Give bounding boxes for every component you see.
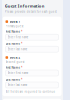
staticText: Enter last name [8, 47, 28, 51]
staticText: All fields are required to continue [5, 90, 55, 93]
staticText: Enter last name [8, 83, 28, 87]
staticText: First Name [5, 66, 20, 69]
staticText: * [21, 42, 22, 46]
staticText: Second guest [5, 60, 24, 64]
staticText: Last Name [5, 42, 20, 46]
staticText: Primary guest [5, 24, 23, 28]
button[interactable]: Last Name [5, 42, 58, 52]
button[interactable]: Last Name [5, 78, 58, 88]
staticText: Enter first name [8, 35, 29, 39]
button[interactable]: First Name [5, 66, 58, 76]
staticText: * [21, 78, 22, 81]
staticText: Please provide details for each guest [5, 10, 57, 13]
staticText: Guest 2 [9, 56, 20, 59]
staticText: Guest 1 [9, 20, 20, 23]
staticText: * [21, 30, 22, 34]
staticText: * [21, 66, 22, 69]
staticText: Last Name [5, 78, 20, 81]
staticText: First Name [5, 30, 20, 34]
staticText: Guest Information [5, 3, 45, 8]
button[interactable]: First Name [5, 30, 58, 40]
staticText: Enter first name [8, 71, 29, 75]
